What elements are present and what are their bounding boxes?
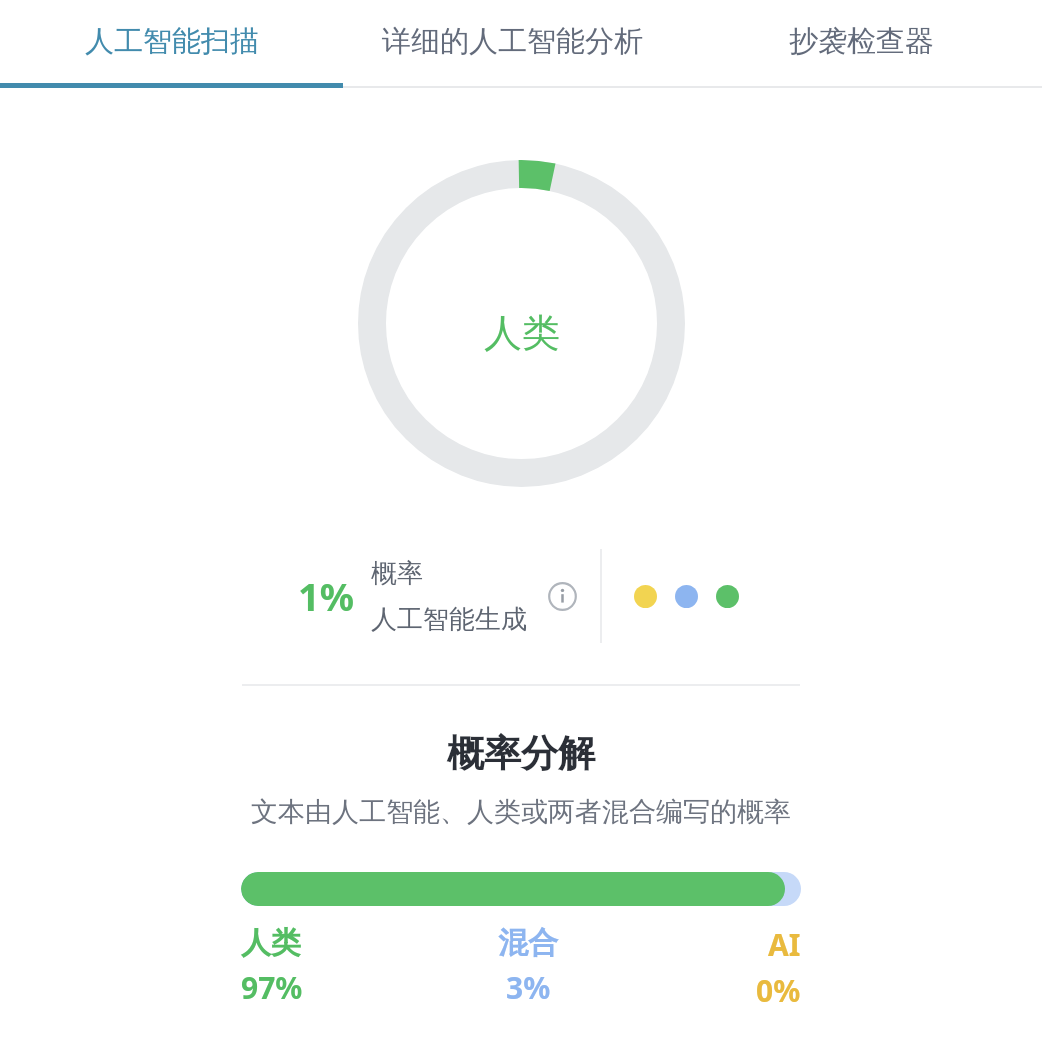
staticText: 概率 <box>371 557 423 590</box>
staticText: 人类 <box>484 309 560 357</box>
staticText: 3% <box>506 967 551 1008</box>
button[interactable]: Information <box>545 579 579 613</box>
staticText: 抄袭检查器 <box>789 23 934 60</box>
staticText: 人类 <box>241 924 301 962</box>
staticText: 混合 <box>498 924 558 962</box>
staticText: 概率分解 <box>447 730 595 777</box>
staticText: 文本由人工智能、人类或两者混合编写的概率 <box>251 795 791 829</box>
staticText: 97% <box>241 967 303 1008</box>
button[interactable]: 抄袭检查器 <box>681 0 1042 82</box>
staticText: 0% <box>756 970 801 1011</box>
button[interactable]: 人工智能扫描 <box>0 0 343 82</box>
button[interactable]: 详细的人工智能分析 <box>343 0 681 82</box>
staticText: AI <box>768 924 801 965</box>
staticText: 1% <box>298 570 355 622</box>
staticText: 详细的人工智能分析 <box>382 23 643 60</box>
staticText: 人工智能生成 <box>371 603 527 636</box>
staticText: 人工智能扫描 <box>85 23 259 60</box>
